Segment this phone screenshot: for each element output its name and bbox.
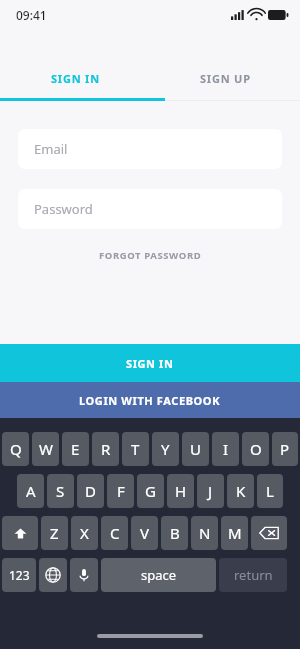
button[interactable]: N	[191, 516, 218, 550]
button[interactable]: L	[257, 474, 283, 508]
button[interactable]: SIGN IN	[0, 56, 150, 101]
staticText: Z	[50, 523, 59, 543]
button[interactable]: Change keyboard	[39, 558, 67, 592]
staticText: C	[110, 523, 120, 543]
staticText: SIGN IN	[51, 71, 100, 86]
staticText: Y	[161, 439, 170, 459]
staticText: D	[85, 481, 96, 501]
staticText: I	[223, 439, 229, 459]
staticText: Email	[34, 140, 68, 158]
staticText: R	[101, 439, 111, 459]
staticText: U	[190, 439, 201, 459]
button[interactable]: return	[219, 558, 287, 592]
button[interactable]: T	[122, 432, 149, 466]
staticText: B	[170, 523, 180, 543]
button[interactable]: J	[197, 474, 224, 508]
staticText: K	[236, 481, 246, 501]
button[interactable]: A	[17, 474, 44, 508]
staticText: G	[145, 481, 156, 501]
staticText: Q	[10, 439, 22, 459]
staticText: P	[280, 439, 290, 459]
button[interactable]: LOGIN WITH FACEBOOK	[0, 382, 300, 418]
button[interactable]: K	[227, 474, 254, 508]
button[interactable]: Voice input	[70, 558, 98, 592]
button[interactable]: O	[242, 432, 269, 466]
button[interactable]: space	[101, 558, 216, 592]
button[interactable]: C	[101, 516, 128, 550]
button[interactable]: D	[77, 474, 104, 508]
staticText: N	[199, 523, 211, 543]
staticText: W	[39, 439, 53, 459]
button[interactable]: S	[47, 474, 74, 508]
staticText: L	[266, 481, 274, 501]
staticText: 123	[9, 567, 30, 583]
button[interactable]: M	[221, 516, 248, 550]
button[interactable]: B	[161, 516, 188, 550]
staticText: V	[140, 523, 150, 543]
staticText: J	[208, 481, 213, 501]
button[interactable]: E	[62, 432, 89, 466]
staticText: O	[250, 439, 262, 459]
button[interactable]: Z	[41, 516, 68, 550]
staticText: M	[228, 523, 242, 543]
button[interactable]: U	[182, 432, 209, 466]
staticText: Password	[34, 200, 93, 218]
staticText: A	[26, 481, 36, 501]
staticText: LOGIN WITH FACEBOOK	[79, 393, 221, 408]
button[interactable]: FORGOT PASSWORD	[93, 243, 208, 268]
staticText: 09:41	[16, 7, 47, 23]
staticText: return	[234, 566, 273, 584]
staticText: space	[141, 566, 177, 584]
staticText: SIGN IN	[126, 356, 174, 371]
button[interactable]: Y	[152, 432, 179, 466]
staticText: T	[131, 439, 140, 459]
button[interactable]: SIGN IN	[0, 344, 300, 382]
staticText: SIGN UP	[200, 71, 251, 86]
button[interactable]: R	[92, 432, 119, 466]
button[interactable]: Shift	[2, 516, 38, 550]
staticText: F	[117, 481, 125, 501]
button[interactable]: X	[71, 516, 98, 550]
staticText: H	[175, 481, 187, 501]
button[interactable]: SIGN UP	[150, 56, 300, 101]
button[interactable]: P	[272, 432, 298, 466]
button[interactable]: I	[212, 432, 239, 466]
button[interactable]: Email	[18, 129, 282, 169]
staticText: S	[56, 481, 65, 501]
staticText: X	[80, 523, 89, 543]
button[interactable]: G	[137, 474, 164, 508]
button[interactable]: F	[107, 474, 134, 508]
button[interactable]: V	[131, 516, 158, 550]
button[interactable]: 123	[2, 558, 36, 592]
button[interactable]: Backspace	[251, 516, 287, 550]
button[interactable]: H	[167, 474, 194, 508]
staticText: FORGOT PASSWORD	[99, 249, 202, 262]
button[interactable]: W	[32, 432, 59, 466]
staticText: E	[71, 439, 80, 459]
button[interactable]: Password	[18, 189, 282, 229]
button[interactable]: Q	[2, 432, 29, 466]
